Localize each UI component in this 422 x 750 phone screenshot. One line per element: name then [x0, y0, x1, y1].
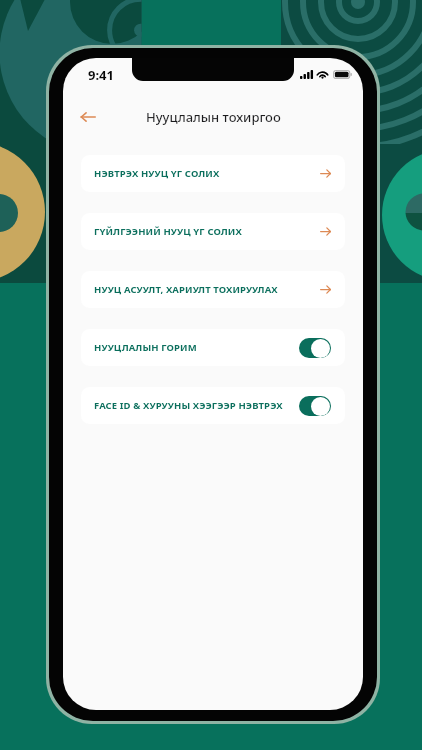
button[interactable]: Toggle FACE ID & ХУРУУНЫ ХЭЭГЭЭР НЭВТРЭХ [299, 396, 331, 416]
button[interactable]: Toggle НУУЦЛАЛЫН ГОРИМ [299, 338, 331, 358]
button[interactable]: НУУЦ АСУУЛТ, ХАРИУЛТ ТОХИРУУЛАХ [81, 271, 345, 308]
button[interactable]: НУУЦЛАЛЫН ГОРИМ [81, 329, 345, 366]
staticText: НУУЦЛАЛЫН ГОРИМ [94, 341, 197, 354]
staticText: НЭВТРЭХ НУУЦ ҮГ СОЛИХ [94, 167, 220, 180]
staticText: FACE ID & ХУРУУНЫ ХЭЭГЭЭР НЭВТРЭХ [94, 399, 283, 412]
button[interactable]: Back [75, 104, 101, 130]
staticText: ГҮЙЛГЭЭНИЙ НУУЦ ҮГ СОЛИХ [94, 225, 242, 238]
staticText: 9:41 [88, 66, 114, 84]
button[interactable]: FACE ID & ХУРУУНЫ ХЭЭГЭЭР НЭВТРЭХ [81, 387, 345, 424]
staticText: Нууцлалын тохиргоо [146, 108, 281, 126]
button[interactable]: НЭВТРЭХ НУУЦ ҮГ СОЛИХ [81, 155, 345, 192]
button[interactable]: ГҮЙЛГЭЭНИЙ НУУЦ ҮГ СОЛИХ [81, 213, 345, 250]
staticText: НУУЦ АСУУЛТ, ХАРИУЛТ ТОХИРУУЛАХ [94, 283, 278, 296]
